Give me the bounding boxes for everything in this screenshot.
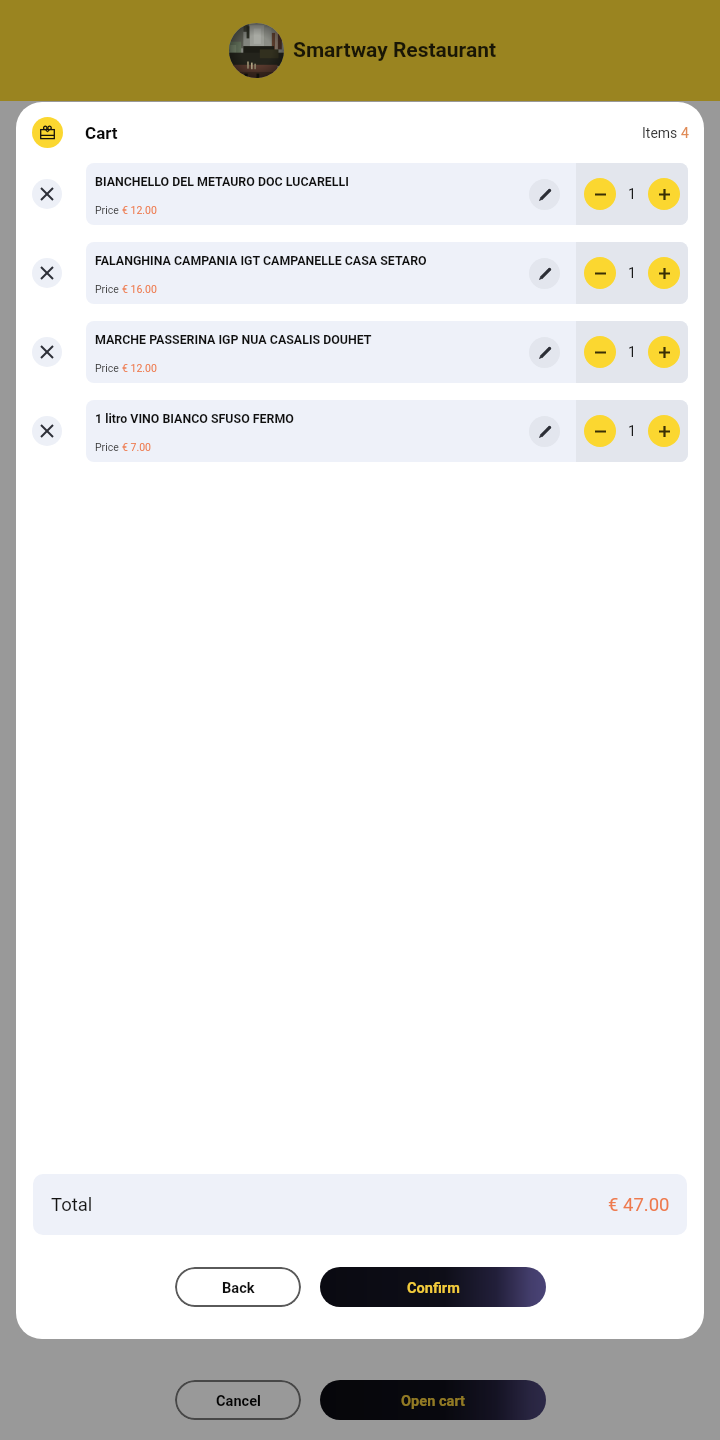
staticText: € 16.00 <box>122 283 157 295</box>
staticText: € 12.00 <box>122 204 157 216</box>
staticText: Price <box>95 283 122 295</box>
button[interactable]: Increase quantity <box>648 415 680 447</box>
button[interactable]: Open cart <box>320 1380 546 1420</box>
staticText: Price <box>95 362 122 374</box>
staticText: 1 <box>628 423 636 439</box>
staticText: Back <box>222 1279 255 1296</box>
staticText: € 47.00 <box>608 1194 670 1216</box>
button[interactable]: Decrease quantity <box>584 257 616 289</box>
staticText: BIANCHELLO DEL METAURO DOC LUCARELLI <box>95 174 349 189</box>
staticText: 4 <box>681 125 689 141</box>
button[interactable]: Decrease quantity <box>584 178 616 210</box>
button[interactable]: Edit item <box>529 258 560 289</box>
button[interactable]: Remove item <box>32 337 62 367</box>
button[interactable]: Remove item <box>32 179 62 209</box>
staticText: FALANGHINA CAMPANIA IGT CAMPANELLE CASA … <box>95 253 427 268</box>
staticText: 1 <box>628 265 636 281</box>
staticText: Cart <box>85 123 118 143</box>
button[interactable]: Total <box>33 1174 687 1235</box>
button[interactable]: Confirm <box>320 1267 546 1307</box>
button[interactable]: Decrease quantity <box>584 415 616 447</box>
staticText: € 7.00 <box>122 441 151 453</box>
staticText: Price <box>95 441 122 453</box>
staticText: MARCHE PASSERINA IGP NUA CASALIS DOUHET <box>95 332 372 347</box>
button[interactable]: FALANGHINA CAMPANIA IGT CAMPANELLE CASA … <box>86 242 688 304</box>
button[interactable]: Increase quantity <box>648 336 680 368</box>
button[interactable]: MARCHE PASSERINA IGP NUA CASALIS DOUHET <box>86 321 688 383</box>
staticText: 1 litro VINO BIANCO SFUSO FERMO <box>95 411 294 426</box>
staticText: Total <box>51 1194 93 1216</box>
staticText: Open cart <box>401 1392 466 1409</box>
button[interactable]: 1 litro VINO BIANCO SFUSO FERMO <box>86 400 688 462</box>
button[interactable]: Cart <box>32 117 63 148</box>
button[interactable]: Increase quantity <box>648 178 680 210</box>
button[interactable]: Edit item <box>529 179 560 210</box>
staticText: 1 <box>628 186 636 202</box>
button[interactable]: BIANCHELLO DEL METAURO DOC LUCARELLI <box>86 163 688 225</box>
staticText: Items <box>642 125 681 141</box>
button[interactable]: Remove item <box>32 416 62 446</box>
button[interactable]: Decrease quantity <box>584 336 616 368</box>
button[interactable]: Remove item <box>32 258 62 288</box>
button[interactable]: Edit item <box>529 337 560 368</box>
staticText: Confirm <box>407 1279 460 1296</box>
button[interactable]: Cancel <box>175 1380 301 1420</box>
staticText: Price <box>95 204 122 216</box>
button[interactable]: Back <box>175 1267 301 1307</box>
button[interactable]: Increase quantity <box>648 257 680 289</box>
staticText: € 12.00 <box>122 362 157 374</box>
staticText: Cancel <box>216 1392 261 1409</box>
staticText: Smartway Restaurant <box>293 38 497 63</box>
button[interactable]: Edit item <box>529 416 560 447</box>
staticText: 1 <box>628 344 636 360</box>
